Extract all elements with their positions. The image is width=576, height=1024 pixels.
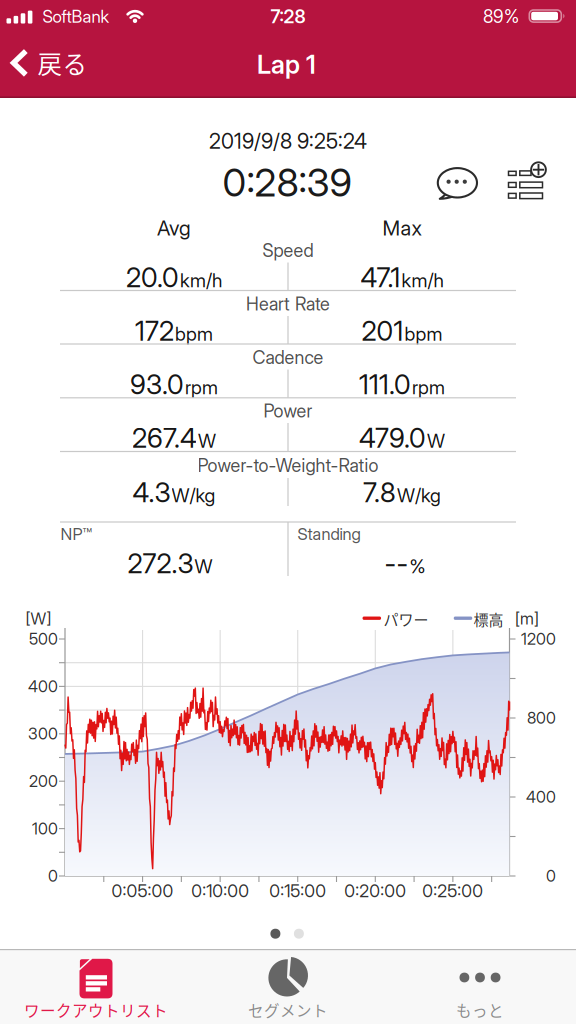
staticText: % — [409, 555, 425, 578]
staticText: Avg — [157, 216, 191, 240]
staticText: 500 — [29, 629, 58, 649]
staticText: 89% — [483, 6, 519, 27]
staticText: 200 — [29, 771, 58, 791]
staticText: 172 — [135, 315, 174, 347]
staticText: bpm — [404, 322, 442, 345]
staticText: -- — [384, 547, 408, 580]
staticText: 0 — [48, 866, 58, 886]
button[interactable]: Comments — [431, 160, 481, 204]
staticText: 267.4 — [132, 422, 197, 454]
staticText: 標高 — [473, 608, 503, 630]
staticText: 0 — [546, 866, 556, 886]
button[interactable]: もっと — [384, 949, 576, 1024]
staticText: W/kg — [397, 484, 441, 507]
staticText: W — [427, 429, 445, 452]
staticText: NP™ — [60, 524, 92, 544]
staticText: パワー — [383, 608, 428, 630]
staticText: Heart Rate — [246, 293, 330, 315]
staticText: 0:05:00 — [112, 880, 174, 902]
staticText: ワークアウトリスト — [24, 999, 168, 1021]
staticText: 111.0 — [359, 368, 411, 401]
button[interactable]: Back — [10, 45, 87, 81]
staticText: Lap 1 — [257, 49, 316, 80]
staticText: 0:25:00 — [422, 880, 483, 902]
staticText: 1200 — [521, 629, 556, 649]
staticText: Speed — [262, 240, 313, 261]
staticText: 201 — [361, 315, 403, 347]
staticText: [W] — [25, 608, 51, 628]
staticText: もっと — [456, 999, 504, 1021]
staticText: 0:15:00 — [269, 880, 326, 902]
staticText: 272.3 — [127, 547, 193, 580]
staticText: 479.0 — [359, 422, 426, 454]
staticText: 4.3 — [132, 476, 170, 509]
staticText: 戻る — [37, 45, 87, 81]
staticText: km/h — [180, 269, 222, 292]
button[interactable]: セグメント — [192, 949, 384, 1024]
staticText: bpm — [175, 322, 213, 345]
staticText: SoftBank — [42, 6, 109, 27]
staticText: 400 — [28, 677, 58, 696]
staticText: 400 — [526, 787, 556, 807]
staticText: Max — [382, 216, 421, 240]
staticText: 20.0 — [126, 261, 179, 294]
staticText: 100 — [32, 819, 58, 838]
staticText: W/kg — [171, 484, 215, 507]
staticText: 7:28 — [270, 5, 305, 28]
staticText: W — [194, 555, 212, 578]
staticText: セグメント — [248, 999, 328, 1021]
staticText: [m] — [515, 608, 539, 628]
staticText: 0:20:00 — [344, 880, 406, 902]
staticText: Cadence — [252, 347, 323, 368]
staticText: 47.1 — [360, 261, 400, 294]
staticText: 300 — [28, 724, 58, 743]
staticText: km/h — [401, 269, 443, 292]
button[interactable]: ワークアウトリスト — [0, 949, 192, 1024]
staticText: 800 — [527, 708, 556, 728]
staticText: W — [198, 429, 216, 452]
button[interactable]: Add to list — [505, 162, 547, 202]
staticText: rpm — [412, 376, 445, 399]
staticText: rpm — [185, 376, 218, 399]
staticText: 0:28:39 — [222, 159, 351, 206]
staticText: 2019/9/8 9:25:24 — [209, 128, 367, 154]
staticText: 93.0 — [130, 368, 184, 401]
staticText: Standing — [297, 524, 360, 544]
staticText: 0:10:00 — [191, 880, 249, 902]
staticText: Power — [263, 400, 312, 422]
staticText: Power-to-Weight-Ratio — [197, 455, 378, 476]
staticText: 7.8 — [363, 476, 396, 509]
